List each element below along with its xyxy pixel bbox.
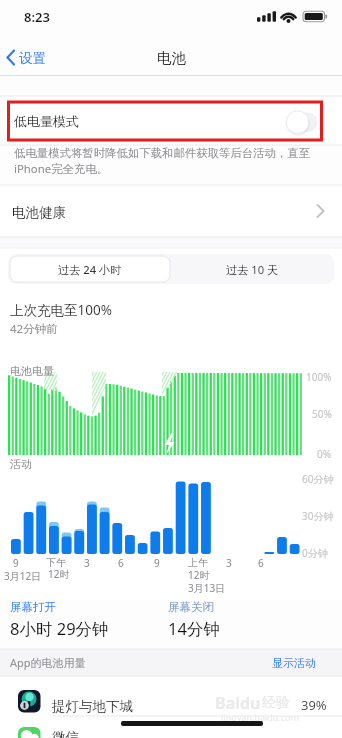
staticText: 上午 (188, 556, 208, 569)
staticText: 8:23 (24, 8, 50, 26)
staticText: 12时 (188, 568, 210, 582)
staticText: 42分钟前 (10, 321, 58, 337)
staticText: 3 (84, 556, 90, 570)
staticText: 9 (154, 556, 160, 570)
button[interactable]: 显示活动 (252, 649, 336, 676)
staticText: 3 (226, 556, 232, 570)
staticText: 0分钟 (302, 546, 328, 560)
staticText: 6 (118, 556, 124, 570)
button[interactable] (0, 716, 342, 738)
staticText: 100% (306, 370, 332, 384)
staticText: 12时 (48, 567, 70, 581)
staticText: 50% (312, 407, 332, 421)
staticText: 0% (317, 447, 332, 461)
staticText: 提灯与地下城 (52, 698, 133, 715)
staticText: 过去 24 小时 (58, 262, 122, 277)
staticText: 电池 (157, 49, 186, 67)
staticText: 60分钟 (302, 472, 334, 486)
staticText: App的电池用量 (10, 655, 86, 670)
button[interactable] (172, 256, 332, 282)
staticText: 电池健康 (12, 204, 66, 221)
button[interactable] (10, 256, 170, 282)
staticText: 经验 (262, 694, 290, 712)
staticText: 39% (301, 696, 327, 714)
staticText: 屏幕关闭 (168, 600, 214, 614)
staticText: 活动 (10, 457, 32, 471)
staticText: 设置 (19, 50, 46, 67)
staticText: 下午 (46, 556, 66, 569)
button[interactable] (0, 676, 342, 716)
staticText: 14分钟 (168, 617, 220, 640)
staticText: 低电量模式将暂时降低如下载和邮件获取等后台活动，直至 (14, 146, 311, 160)
staticText: 3月12日 (4, 569, 42, 583)
staticText: jingyan.baidu.com (221, 711, 299, 723)
staticText: 过去 10 天 (226, 262, 279, 277)
staticText: 电池电量 (10, 364, 54, 378)
staticText: 9 (13, 556, 19, 570)
staticText: 低电量模式 (14, 113, 79, 129)
staticText: 3月13日 (188, 581, 226, 595)
staticText: 6 (258, 556, 264, 570)
staticText: 8小时 29分钟 (10, 617, 109, 640)
staticText: 上次充电至100% (10, 301, 112, 319)
staticText: 微信 (52, 729, 79, 738)
staticText: Baidu (215, 692, 261, 714)
staticText: 30分钟 (302, 509, 334, 523)
button[interactable] (0, 96, 342, 145)
staticText: 屏幕打开 (10, 600, 56, 614)
button[interactable] (4, 44, 60, 72)
staticText: 显示活动 (272, 656, 316, 670)
button[interactable] (0, 185, 342, 237)
staticText: iPhone完全充电。 (14, 161, 109, 177)
